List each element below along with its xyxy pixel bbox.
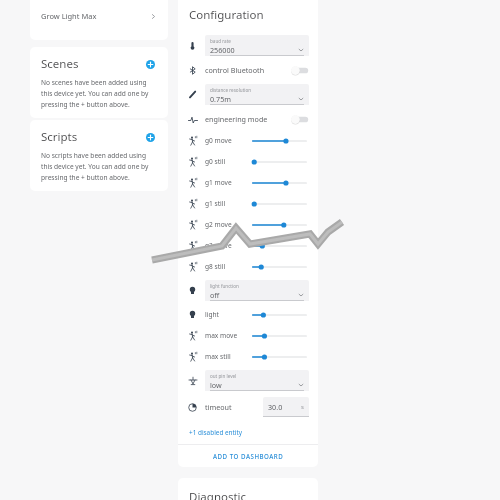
staticText: timeout	[205, 402, 232, 412]
button[interactable]: timeout	[178, 394, 318, 420]
staticText: 256000	[210, 45, 235, 55]
button[interactable]: control Bluetooth	[289, 65, 309, 76]
staticText: g1 still thresh...	[205, 199, 247, 208]
staticText: max move dis...	[205, 331, 247, 340]
staticText: off	[210, 290, 220, 300]
staticText: 30.0	[268, 402, 283, 412]
button[interactable]: control Bluetooth	[178, 59, 318, 81]
button[interactable]: g3 move thres...	[250, 235, 309, 256]
staticText: Scenes	[41, 56, 79, 72]
staticText: max still dista...	[205, 352, 247, 361]
button[interactable]: g1 move thres...	[178, 172, 318, 193]
button[interactable]: baud rate	[178, 32, 318, 59]
staticText: g0 move thres...	[205, 136, 247, 145]
button[interactable]: Add Scripts	[143, 130, 157, 144]
button[interactable]: g3 move thres...	[178, 235, 318, 256]
staticText: low	[210, 380, 222, 390]
staticText: Grow Light Max	[41, 11, 97, 21]
button[interactable]: g0 move thres...	[178, 130, 318, 151]
button[interactable]: g0 move thres...	[250, 130, 309, 151]
button[interactable]: max move dis...	[250, 325, 309, 346]
staticText: Diagnostic	[189, 489, 247, 500]
button[interactable]: g8 still thresh...	[250, 256, 309, 277]
button[interactable]: g0 still thresh...	[250, 151, 309, 172]
staticText: light threshold	[205, 310, 247, 319]
button[interactable]: ADD TO DASHBOARD	[178, 445, 318, 467]
button[interactable]: light threshold	[250, 304, 309, 325]
staticText: No scenes have been added using this dev…	[41, 78, 157, 109]
button[interactable]: Grow Light Max	[30, 2, 168, 30]
button[interactable]: max still dista...	[178, 346, 318, 367]
button[interactable]: out pin level	[178, 367, 318, 394]
button[interactable]: g2 move thres...	[250, 214, 309, 235]
button[interactable]: Add Scenes	[143, 57, 157, 71]
button[interactable]: engineering mode	[178, 108, 318, 130]
button[interactable]: max move dis...	[178, 325, 318, 346]
staticText: g0 still thresh...	[205, 157, 247, 166]
staticText: g1 move thres...	[205, 178, 247, 187]
staticText: light function	[210, 283, 239, 289]
staticText: No scripts have been added using this de…	[41, 151, 157, 182]
staticText: 0.75m	[210, 94, 231, 104]
staticText: ADD TO DASHBOARD	[213, 452, 284, 460]
button[interactable]: +1 disabled entity	[178, 425, 318, 444]
staticText: g2 move thres...	[205, 220, 247, 229]
staticText: g3 move thres...	[205, 241, 247, 250]
staticText: Scripts	[41, 129, 78, 145]
button[interactable]: g1 still thresh...	[250, 193, 309, 214]
button[interactable]: light function	[178, 277, 318, 304]
button[interactable]: distance resolution	[178, 81, 318, 108]
staticText: s	[301, 403, 304, 411]
button[interactable]: g0 still thresh...	[178, 151, 318, 172]
button[interactable]: g8 still thresh...	[178, 256, 318, 277]
button[interactable]: light threshold	[178, 304, 318, 325]
staticText: Configuration	[189, 7, 264, 23]
staticText: distance resolution	[210, 87, 252, 93]
button[interactable]: g1 move thres...	[250, 172, 309, 193]
staticText: +1 disabled entity	[189, 428, 243, 437]
staticText: baud rate	[210, 38, 231, 44]
button[interactable]: g2 move thres...	[178, 214, 318, 235]
staticText: g8 still thresh...	[205, 262, 247, 271]
button[interactable]: engineering mode	[289, 114, 309, 125]
staticText: out pin level	[210, 373, 237, 379]
button[interactable]: max still dista...	[250, 346, 309, 367]
staticText: engineering mode	[205, 114, 268, 124]
button[interactable]: g1 still thresh...	[178, 193, 318, 214]
staticText: control Bluetooth	[205, 65, 265, 75]
